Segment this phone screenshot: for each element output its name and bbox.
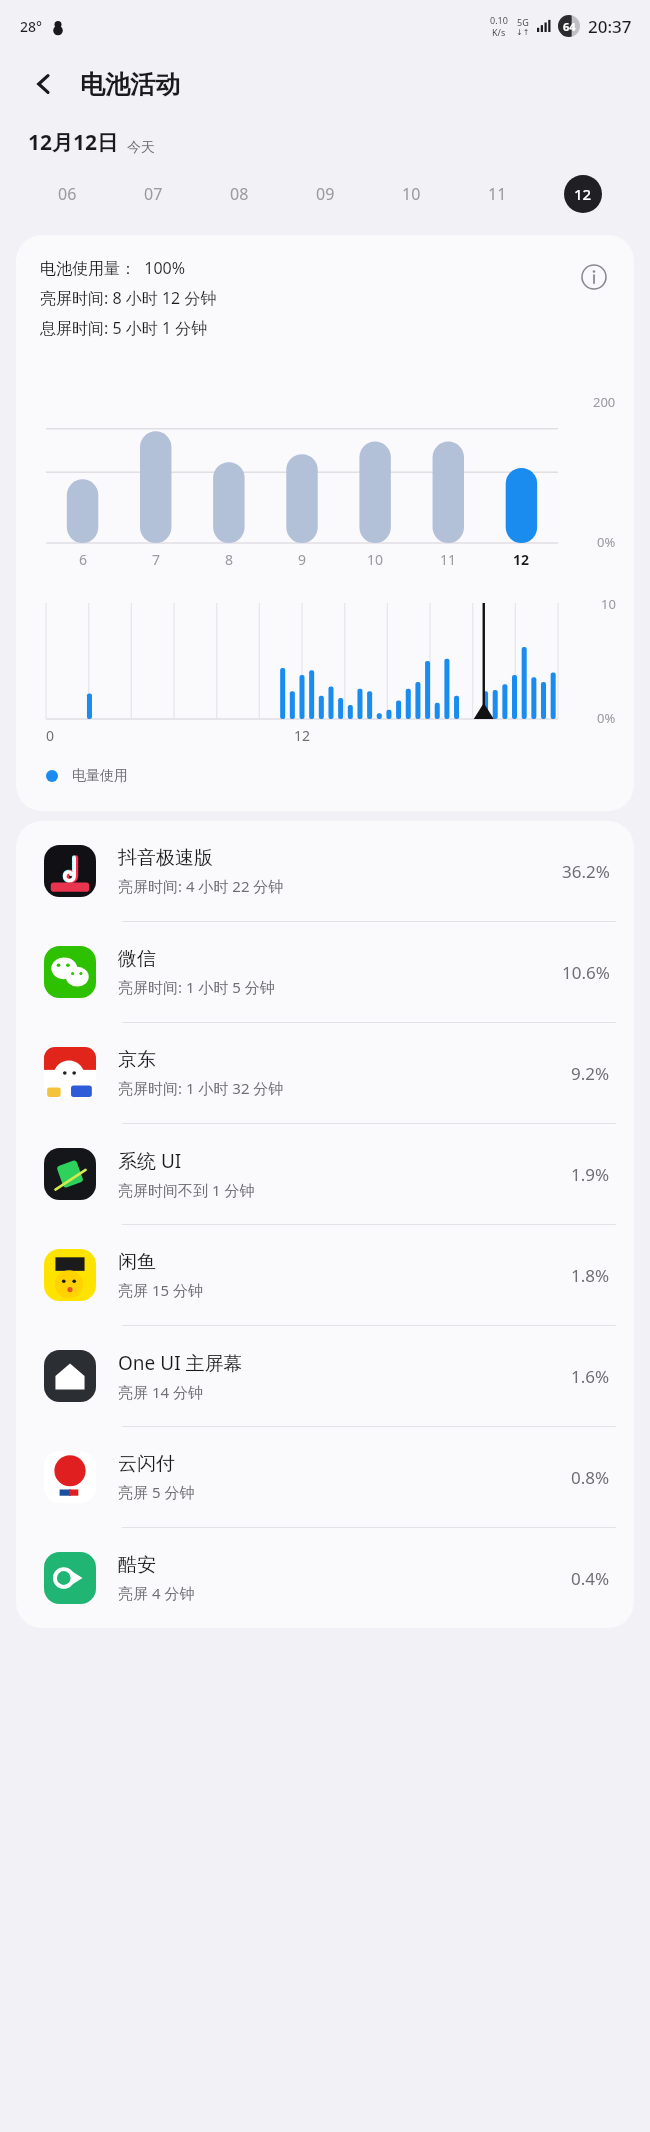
staticText: 系统 UI (118, 1148, 182, 1174)
staticText: 12月12日 (28, 128, 119, 157)
staticText: 6 (79, 550, 88, 569)
staticText: 8 (225, 550, 234, 569)
staticText: 电量使用 (72, 767, 128, 785)
staticText: 闲鱼 (118, 1250, 156, 1274)
staticText: 5G (517, 16, 529, 28)
staticText: 0.4% (571, 1567, 610, 1590)
staticText: 京东 (118, 1048, 156, 1072)
staticText: 今天 (127, 139, 155, 157)
staticText: 12 (294, 726, 311, 745)
staticText: 0% (597, 709, 616, 727)
staticText: 0.8% (571, 1466, 610, 1489)
button[interactable]: 微信 (16, 922, 634, 1022)
staticText: 7 (152, 550, 161, 569)
button[interactable]: 京东 (16, 1023, 634, 1123)
staticText: 0 (46, 726, 55, 745)
staticText: 10 (601, 595, 616, 613)
staticText: 酷安 (118, 1553, 156, 1577)
button[interactable]: 酷安 (16, 1528, 634, 1628)
staticText: 11 (488, 183, 507, 205)
staticText: 12 (574, 184, 592, 204)
staticText: 亮屏时间不到 1 分钟 (118, 1180, 255, 1200)
staticText: 10 (367, 550, 384, 569)
staticText: 07 (144, 183, 163, 205)
staticText: 08 (230, 183, 249, 205)
staticText: 09 (316, 183, 335, 205)
button[interactable]: 11 (454, 165, 540, 223)
staticText: 亮屏 14 分钟 (118, 1382, 203, 1402)
staticText: 10.6% (562, 961, 610, 984)
staticText: 200 (593, 393, 616, 411)
staticText: 12 (513, 550, 530, 569)
staticText: 息屏时间: 5 小时 1 分钟 (40, 317, 208, 339)
staticText: 06 (58, 183, 77, 205)
staticText: 36.2% (562, 860, 610, 883)
staticText: 亮屏时间: 4 小时 22 分钟 (118, 876, 284, 896)
button[interactable]: 06 (24, 165, 110, 223)
staticText: 1.6% (571, 1365, 610, 1388)
staticText: 抖音极速版 (118, 846, 213, 870)
staticText: 电池使用量： 100% (40, 257, 186, 279)
button[interactable]: 12 (540, 165, 626, 223)
staticText: 亮屏时间: 1 小时 32 分钟 (118, 1078, 284, 1098)
button[interactable]: 闲鱼 (16, 1225, 634, 1325)
button[interactable]: 08 (196, 165, 282, 223)
staticText: ↓↑ (516, 28, 530, 37)
staticText: 9 (298, 550, 307, 569)
staticText: 28° (20, 17, 42, 36)
button[interactable]: Info (574, 257, 614, 297)
button[interactable]: 09 (282, 165, 368, 223)
staticText: 亮屏时间: 1 小时 5 分钟 (118, 977, 275, 997)
staticText: K/s (492, 26, 506, 38)
staticText: 1.9% (571, 1163, 610, 1186)
staticText: 微信 (118, 947, 156, 971)
button[interactable]: 10 (368, 165, 454, 223)
button[interactable]: 系统 UI (16, 1124, 634, 1224)
staticText: 20:37 (588, 15, 632, 38)
button[interactable]: 07 (110, 165, 196, 223)
staticText: 0% (597, 533, 616, 551)
staticText: 10 (402, 183, 421, 205)
button[interactable]: 抖音极速版 (16, 821, 634, 921)
staticText: 11 (440, 550, 457, 569)
button[interactable]: One UI 主屏幕 (16, 1326, 634, 1426)
staticText: 1.8% (571, 1264, 610, 1287)
staticText: 亮屏 15 分钟 (118, 1280, 203, 1300)
staticText: 9.2% (571, 1062, 610, 1085)
button[interactable]: 电量使用 (46, 767, 634, 785)
staticText: 电池活动 (80, 69, 180, 100)
staticText: One UI 主屏幕 (118, 1350, 243, 1376)
button[interactable]: 云闪付 (16, 1427, 634, 1527)
staticText: 云闪付 (118, 1452, 175, 1476)
staticText: 64 (563, 19, 576, 34)
staticText: 亮屏时间: 8 小时 12 分钟 (40, 287, 217, 309)
staticText: 0.10 (490, 14, 508, 26)
staticText: 亮屏 4 分钟 (118, 1583, 195, 1603)
button[interactable]: Back (22, 62, 66, 106)
staticText: 亮屏 5 分钟 (118, 1482, 195, 1502)
